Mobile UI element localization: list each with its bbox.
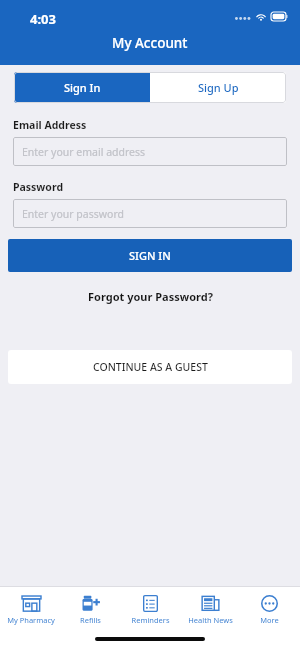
staticText: Reminders (131, 615, 170, 625)
staticText: Password (13, 180, 64, 194)
staticText: More (260, 615, 279, 625)
staticText: My Pharmacy (7, 615, 55, 625)
staticText: Health News (188, 615, 233, 625)
staticText: Email Address (13, 118, 87, 132)
staticText: SIGN IN (129, 248, 171, 263)
staticText: Sign Up (198, 80, 239, 95)
button[interactable]: Enter your password (13, 199, 287, 228)
staticText: My Account (112, 34, 188, 52)
staticText: Forgot your Password? (88, 289, 213, 304)
button[interactable]: My Pharmacy (2, 587, 60, 632)
button[interactable]: Sign Up (150, 72, 286, 103)
staticText: Enter your email address (22, 145, 146, 159)
staticText: Refills (80, 615, 101, 625)
staticText: CONTINUE AS A GUEST (93, 360, 208, 374)
button[interactable]: CONTINUE AS A GUEST (8, 350, 292, 384)
button[interactable]: Sign In (14, 72, 150, 103)
button[interactable]: SIGN IN (8, 239, 292, 272)
button[interactable]: Enter your email address (13, 137, 287, 166)
staticText: 4:03 (30, 10, 56, 28)
staticText: Enter your password (22, 207, 124, 221)
button[interactable]: Refills (61, 587, 119, 632)
button[interactable]: More (240, 587, 298, 632)
staticText: Sign In (64, 80, 101, 95)
button[interactable]: Reminders (121, 587, 179, 632)
button[interactable]: Health News (181, 587, 239, 632)
